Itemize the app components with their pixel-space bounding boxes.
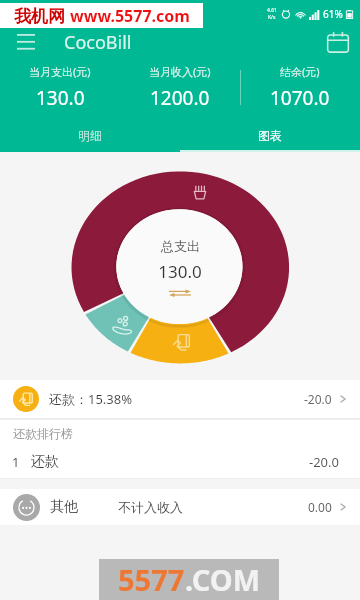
staticText: -20.0	[304, 391, 332, 407]
staticText: 当月收入(元)	[149, 64, 211, 79]
staticText: 1070.0	[270, 85, 330, 111]
staticText: 1	[12, 453, 20, 471]
staticText: 还款	[31, 453, 59, 471]
staticText: 结余(元)	[280, 64, 320, 79]
button[interactable]: 明细	[0, 118, 180, 152]
button[interactable]: 还款：15.38%	[0, 380, 360, 418]
staticText: 130.0	[36, 85, 85, 111]
staticText: CocoBill	[64, 30, 132, 55]
button[interactable]: 1	[0, 446, 360, 478]
staticText: 我机网	[14, 6, 65, 27]
staticText: www.5577.com	[70, 5, 190, 27]
staticText: 1200.0	[150, 85, 210, 111]
staticText: 61%	[323, 7, 343, 21]
staticText: 图表	[258, 128, 282, 143]
staticText: 4.61	[267, 7, 277, 14]
staticText: .COM	[185, 560, 261, 599]
staticText: 还款：15.38%	[49, 390, 133, 408]
staticText: 5577	[118, 560, 185, 599]
staticText: 不计入收入	[118, 499, 183, 515]
staticText: 总支出	[161, 238, 200, 254]
button[interactable]: Menu	[10, 28, 42, 56]
staticText: 130.0	[158, 260, 202, 283]
button[interactable]: 图表	[180, 118, 360, 152]
staticText: 还款排行榜	[13, 426, 73, 441]
button[interactable]: Calendar	[322, 28, 354, 56]
staticText: 当月支出(元)	[29, 64, 91, 79]
staticText: 明细	[78, 128, 102, 143]
staticText: K/s	[268, 14, 276, 21]
staticText: -20.0	[309, 453, 339, 471]
staticText: 0.00	[308, 499, 332, 515]
button[interactable]: 其他	[0, 489, 360, 525]
staticText: 其他	[50, 498, 78, 516]
